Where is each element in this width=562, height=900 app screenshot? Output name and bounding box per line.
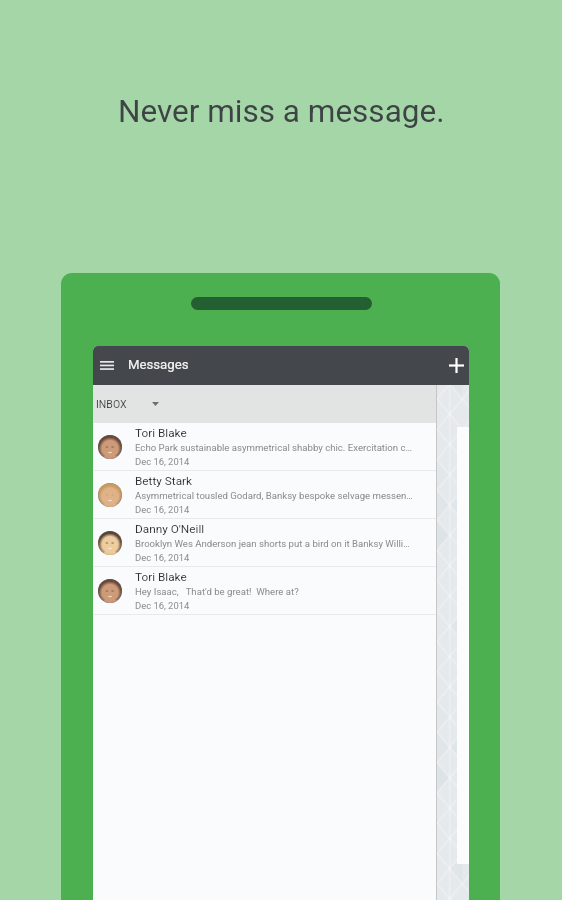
staticText: Dec 16, 2014 (135, 456, 190, 467)
staticText: Brooklyn Wes Anderson jean shorts put a … (135, 538, 410, 549)
staticText: Tori Blake (135, 426, 187, 440)
staticText: Danny O'Neill (135, 522, 205, 536)
staticText: Betty Stark (135, 474, 193, 488)
button[interactable]: Danny O'Neill (93, 519, 436, 567)
staticText: Tori Blake (135, 570, 187, 584)
button[interactable]: Open navigation drawer (97, 346, 117, 385)
button[interactable]: INBOX (93, 385, 436, 423)
button[interactable]: Betty Stark (93, 471, 436, 519)
staticText: Messages (128, 357, 189, 372)
button[interactable]: Compose new message (445, 346, 467, 385)
staticText: INBOX (96, 398, 127, 410)
staticText: Dec 16, 2014 (135, 552, 190, 563)
staticText: Echo Park sustainable asymmetrical shabb… (135, 442, 412, 453)
staticText: Dec 16, 2014 (135, 504, 190, 515)
staticText: Hey Isaac, That'd be great! Where at? (135, 586, 299, 597)
staticText: Never miss a message. (118, 93, 445, 130)
staticText: Asymmetrical tousled Godard, Banksy besp… (135, 490, 413, 501)
button[interactable]: Tori Blake (93, 423, 436, 471)
button[interactable]: Tori Blake (93, 567, 436, 615)
staticText: Dec 16, 2014 (135, 600, 190, 611)
